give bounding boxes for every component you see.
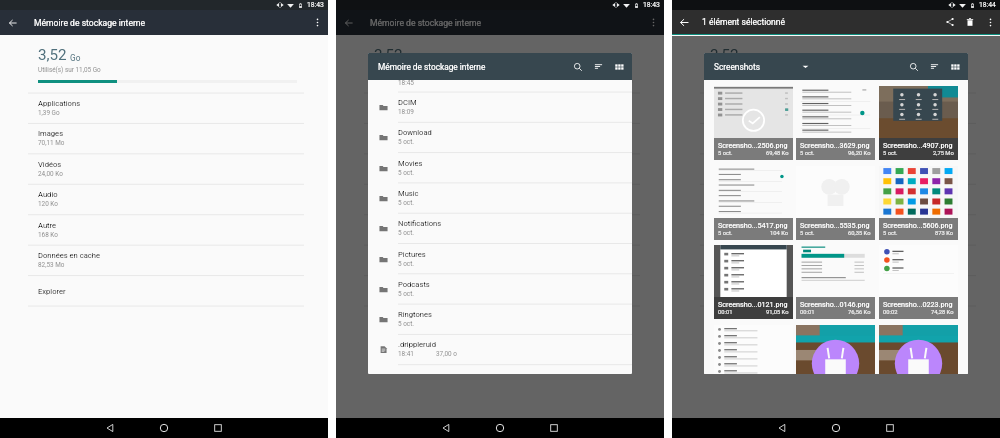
button[interactable]: Recents (208, 418, 228, 438)
button[interactable]: Screensho...5417.png (714, 166, 793, 240)
button[interactable]: Applications (336, 93, 664, 123)
button[interactable]: Explorer (336, 276, 664, 306)
staticText: 5 oct. (398, 169, 414, 177)
button[interactable]: Vidéos (0, 154, 328, 184)
staticText: Données en cache (710, 251, 772, 260)
staticText: 3,52 (374, 46, 403, 64)
staticText: 18:43 (643, 1, 660, 9)
button[interactable]: Screensho...0146.png (796, 245, 875, 319)
staticText: .drippleruid (398, 340, 436, 349)
button[interactable]: Home (826, 418, 846, 438)
button[interactable]: Applications (672, 93, 1000, 123)
button[interactable]: Share (940, 12, 960, 32)
button[interactable]: Autre (0, 215, 328, 245)
button[interactable]: Screensho...5535.png (796, 166, 875, 240)
staticText: 5 oct. (883, 150, 898, 157)
staticText: 60,35 Ko (848, 230, 871, 237)
button[interactable]: More options (306, 10, 328, 35)
staticText: 5 oct. (800, 230, 815, 237)
button[interactable]: Applications (0, 93, 328, 123)
button[interactable]: Explorer (672, 276, 1000, 306)
button[interactable]: Notifications (368, 213, 632, 243)
button[interactable]: Données en cache (336, 245, 664, 275)
staticText: 18:45 (398, 79, 414, 87)
staticText: Audio (374, 190, 394, 199)
staticText: 76,56 Ko (848, 309, 871, 316)
staticText: Screensho...5417.png (718, 221, 788, 229)
button[interactable]: Screensho...0223.png (879, 245, 958, 319)
staticText: 5 oct. (883, 230, 898, 237)
button[interactable]: Change view (608, 53, 628, 80)
staticText: Autre (374, 221, 393, 230)
staticText: 1 élément sélectionné (702, 17, 786, 27)
button[interactable]: Back (100, 418, 120, 438)
staticText: Notifications (398, 219, 442, 228)
staticText: Screensho...5606.png (883, 221, 953, 229)
button[interactable]: Screensho...5606.png (879, 166, 958, 240)
staticText: Mémoire de stockage interne (370, 18, 482, 28)
staticText: 18:43 (307, 1, 324, 9)
button[interactable]: Search (904, 53, 924, 80)
staticText: Screensho...4907.png (883, 141, 953, 149)
staticText: 70,11 Mo (374, 139, 401, 147)
button[interactable]: Sort (588, 53, 608, 80)
staticText: 168 Ko (710, 231, 730, 239)
button[interactable]: Music (368, 183, 632, 213)
button[interactable]: More options (980, 12, 1000, 32)
button[interactable]: Screensho...2506.png (714, 86, 793, 160)
staticText: Screensho...0121.png (718, 300, 788, 308)
button[interactable]: Ringtones (368, 304, 632, 334)
button[interactable]: Vidéos (336, 154, 664, 184)
button[interactable]: Images (0, 123, 328, 153)
staticText: Images (710, 129, 736, 138)
button[interactable]: .drippleruid (368, 334, 632, 364)
button[interactable]: Change view (944, 53, 964, 80)
button[interactable]: Autre (672, 215, 1000, 245)
staticText: 5 oct. (398, 199, 414, 207)
button[interactable]: Delete (960, 12, 980, 32)
button[interactable]: Audio (336, 184, 664, 214)
button[interactable]: Recents (544, 418, 564, 438)
button[interactable] (879, 325, 958, 374)
button[interactable]: Audio (0, 184, 328, 214)
button[interactable]: Podcasts (368, 274, 632, 304)
button[interactable]: Home (154, 418, 174, 438)
button[interactable]: Screensho...0121.png (714, 245, 793, 319)
button[interactable]: Back (0, 10, 26, 35)
staticText: 82,53 Mo (38, 261, 65, 269)
button[interactable]: Screensho...4907.png (879, 86, 958, 160)
staticText: Utilisé(s) sur 11,05 Go (374, 66, 437, 74)
button[interactable]: Explorer (0, 276, 328, 306)
button[interactable]: Autre (336, 215, 664, 245)
staticText: 5 oct. (398, 290, 414, 298)
button[interactable] (796, 325, 875, 374)
button[interactable] (714, 325, 793, 374)
button[interactable]: Screensho...3629.png (796, 86, 875, 160)
button[interactable]: Recents (880, 418, 900, 438)
button[interactable]: Données en cache (0, 245, 328, 275)
button[interactable]: Back (436, 418, 456, 438)
button[interactable]: Données en cache (672, 245, 1000, 275)
staticText: Mémoire de stockage interne (378, 62, 486, 72)
button[interactable]: Movies (368, 153, 632, 183)
staticText: 3,52 (710, 46, 739, 64)
button[interactable]: Images (336, 123, 664, 153)
staticText: Images (38, 129, 64, 138)
staticText: Music (398, 189, 419, 198)
staticText: Screenshots (714, 62, 760, 72)
staticText: Audio (38, 190, 58, 199)
button[interactable]: Back (772, 418, 792, 438)
staticText: Autre (38, 221, 57, 230)
staticText: 5 oct. (718, 230, 733, 237)
button[interactable]: Download (368, 122, 632, 152)
button[interactable]: Search (568, 53, 588, 80)
button[interactable]: DCIM (368, 92, 632, 122)
button[interactable]: Images (672, 123, 1000, 153)
button[interactable]: Sort (924, 53, 944, 80)
button[interactable]: Home (490, 418, 510, 438)
staticText: 120 Ko (38, 200, 58, 208)
button[interactable]: Pictures (368, 244, 632, 274)
button[interactable]: Audio (672, 184, 1000, 214)
button[interactable]: Vidéos (672, 154, 1000, 184)
